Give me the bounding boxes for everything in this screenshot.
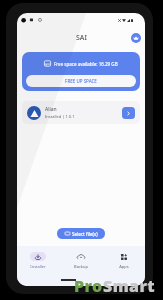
button[interactable]: Open	[122, 107, 135, 119]
staticText: Select file(s)	[72, 231, 98, 237]
button[interactable]: Select file(s)	[57, 228, 105, 239]
button[interactable]: Backup	[59, 252, 102, 269]
staticText: Alian	[45, 106, 57, 113]
staticText: Installer	[30, 264, 46, 269]
staticText: Free space available: 16.29 GB	[54, 61, 118, 67]
staticText: Apps	[119, 264, 129, 269]
staticText: Smart	[103, 275, 156, 297]
button[interactable]: Donate	[131, 33, 141, 43]
button[interactable]: Alian	[22, 101, 140, 124]
button[interactable]: Apps	[102, 252, 145, 269]
staticText: FREE UP SPACE	[65, 78, 97, 84]
button[interactable]: Installer	[17, 252, 59, 269]
staticText: Installed | 1.0.1	[45, 114, 75, 119]
button[interactable]: FREE UP SPACE	[26, 75, 136, 87]
staticText: Pro	[74, 275, 103, 297]
staticText: SAI	[76, 33, 87, 43]
staticText: Backup	[74, 264, 88, 269]
